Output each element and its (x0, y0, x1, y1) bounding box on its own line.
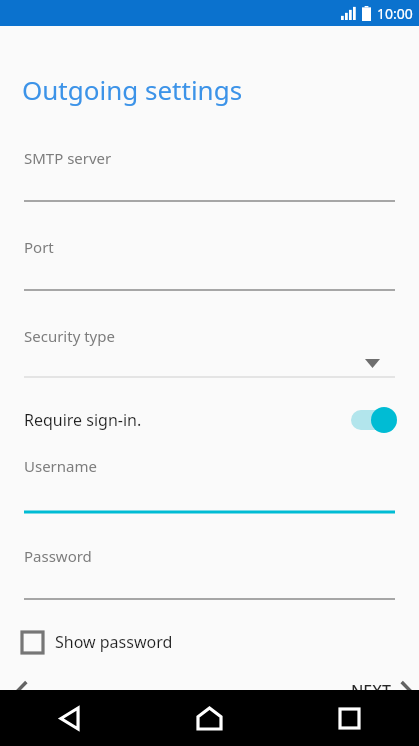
staticText: Require sign-in. (24, 409, 142, 431)
button[interactable]: Password (0, 536, 419, 599)
button[interactable]: Back (0, 669, 44, 713)
staticText: Show password (55, 631, 173, 653)
button[interactable]: Recent apps (279, 690, 419, 746)
button[interactable]: Require sign-in. (0, 398, 419, 442)
staticText: Port (24, 237, 54, 257)
staticText: 10:00 (377, 4, 413, 23)
staticText: Username (24, 456, 97, 476)
button[interactable]: Back (0, 690, 139, 746)
button[interactable]: Port (0, 226, 419, 290)
button[interactable]: SMTP server (0, 136, 419, 202)
button[interactable]: Username (0, 446, 419, 511)
staticText: Outgoing settings (22, 72, 243, 107)
button[interactable]: NEXT (336, 669, 419, 713)
button[interactable]: Show password (0, 622, 187, 662)
button[interactable]: Home (139, 690, 279, 746)
staticText: Password (24, 546, 92, 566)
staticText: SMTP server (24, 148, 112, 168)
button[interactable]: Security type dropdown (0, 315, 419, 377)
staticText: Security type (24, 326, 115, 346)
staticText: NEXT (350, 680, 391, 702)
